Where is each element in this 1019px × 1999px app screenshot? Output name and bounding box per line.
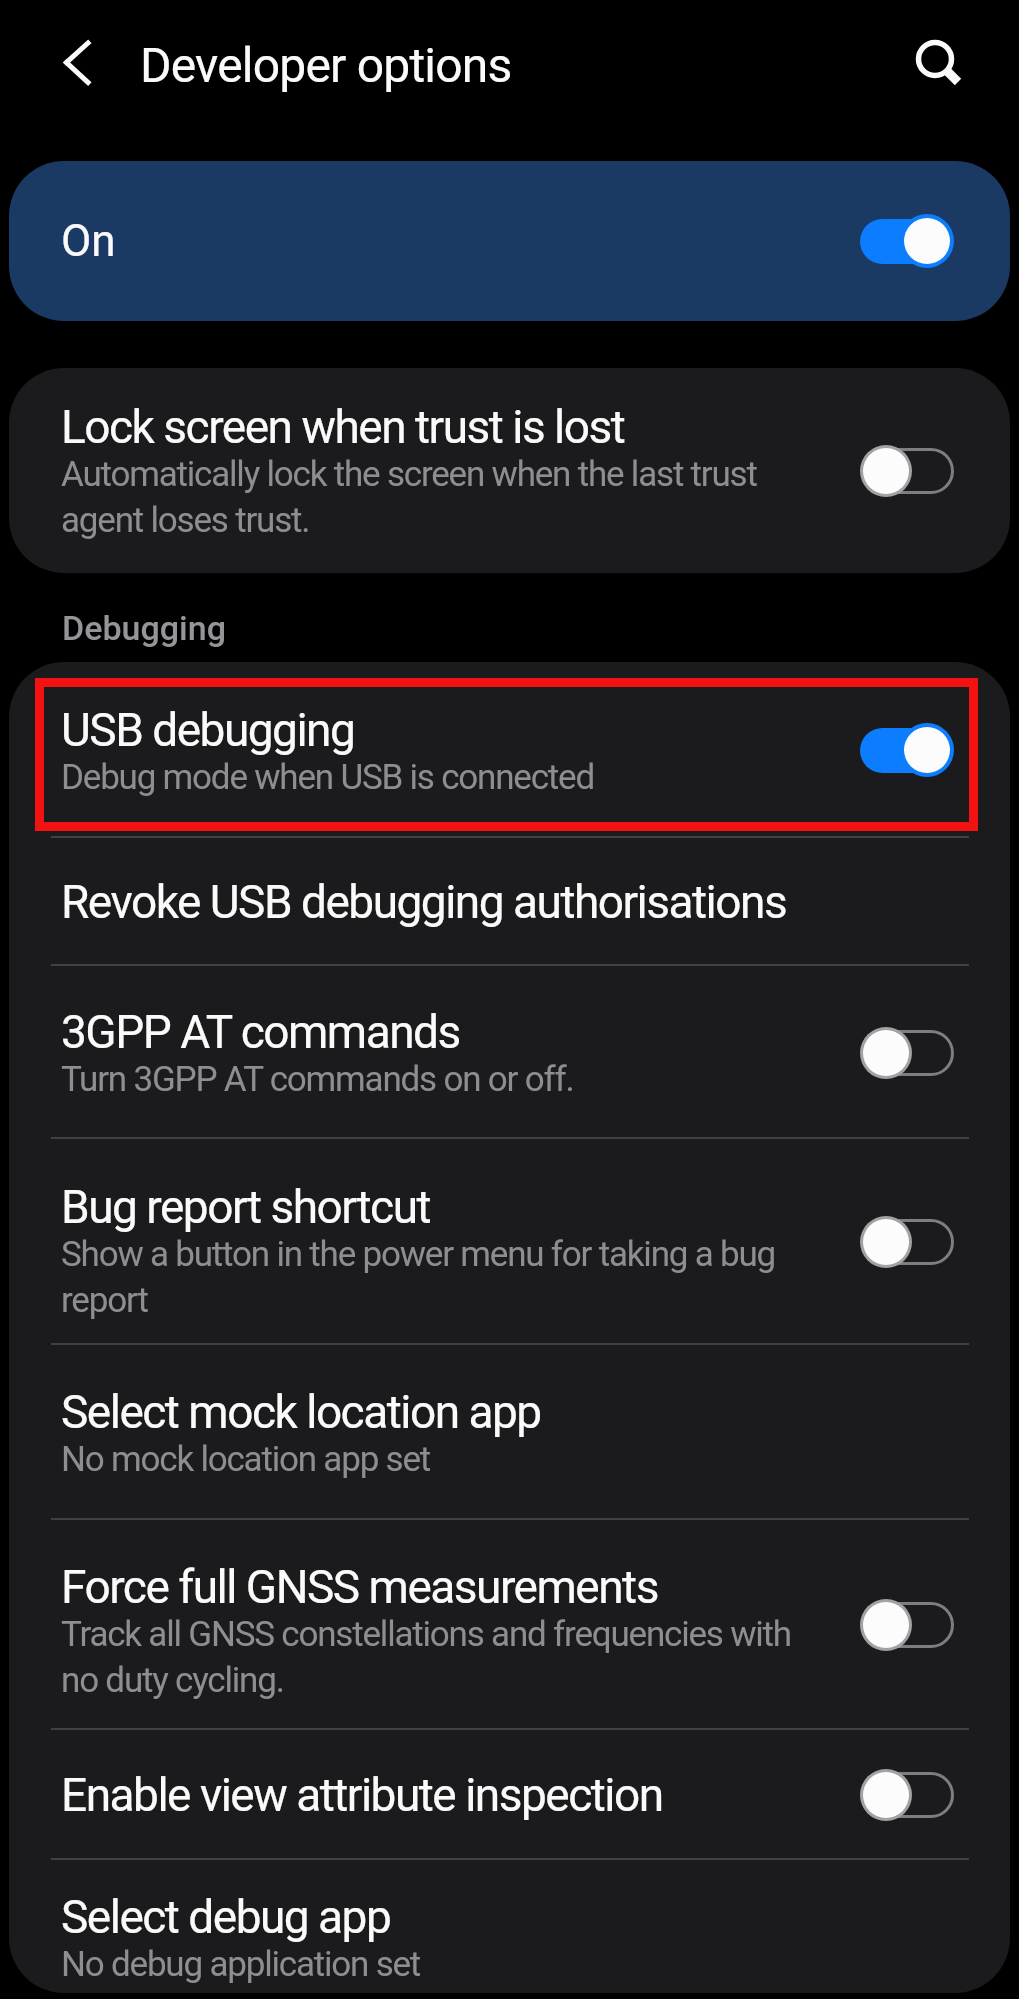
button[interactable]: Lock screen when trust is lost <box>9 368 1010 573</box>
button[interactable]: USB debugging <box>9 662 1010 838</box>
button[interactable]: 3GPP AT commands <box>9 966 1010 1139</box>
button[interactable] <box>860 1598 954 1652</box>
staticText: Developer options <box>140 37 512 93</box>
button[interactable]: Enable view attribute inspection <box>9 1730 1010 1860</box>
staticText: Turn 3GPP AT commands on or off. <box>61 1059 574 1100</box>
staticText: No debug application set <box>61 1944 421 1985</box>
button[interactable]: Force full GNSS measurements <box>9 1520 1010 1730</box>
staticText: Automatically lock the screen when the l… <box>61 454 757 541</box>
button[interactable]: Revoke USB debugging authorisations <box>9 838 1010 966</box>
button[interactable]: On <box>9 161 1010 321</box>
button[interactable] <box>860 444 954 498</box>
button[interactable] <box>860 214 954 268</box>
button[interactable] <box>913 35 973 95</box>
button[interactable] <box>860 1768 954 1822</box>
button[interactable]: Bug report shortcut <box>9 1139 1010 1345</box>
staticText: Bug report shortcut <box>61 1180 431 1234</box>
staticText: Select mock location app <box>61 1385 541 1439</box>
staticText: USB debugging <box>61 703 355 757</box>
staticText: Track all GNSS constellations and freque… <box>61 1614 791 1701</box>
button[interactable] <box>50 35 110 95</box>
staticText: Debug mode when USB is connected <box>61 757 594 798</box>
button[interactable] <box>860 1215 954 1269</box>
staticText: Show a button in the power menu for taki… <box>61 1234 776 1321</box>
staticText: 3GPP AT commands <box>61 1005 460 1059</box>
staticText: Revoke USB debugging authorisations <box>61 875 787 929</box>
staticText: Select debug app <box>61 1890 391 1944</box>
staticText: Lock screen when trust is lost <box>61 400 625 454</box>
button[interactable] <box>860 1026 954 1080</box>
button[interactable] <box>860 723 954 777</box>
staticText: On <box>61 215 116 267</box>
button[interactable]: Select mock location app <box>9 1345 1010 1520</box>
staticText: No mock location app set <box>61 1439 431 1480</box>
staticText: Force full GNSS measurements <box>61 1560 658 1614</box>
staticText: Enable view attribute inspection <box>61 1768 663 1822</box>
button[interactable]: Select debug app <box>9 1860 1010 1993</box>
staticText: Debugging <box>62 608 226 648</box>
